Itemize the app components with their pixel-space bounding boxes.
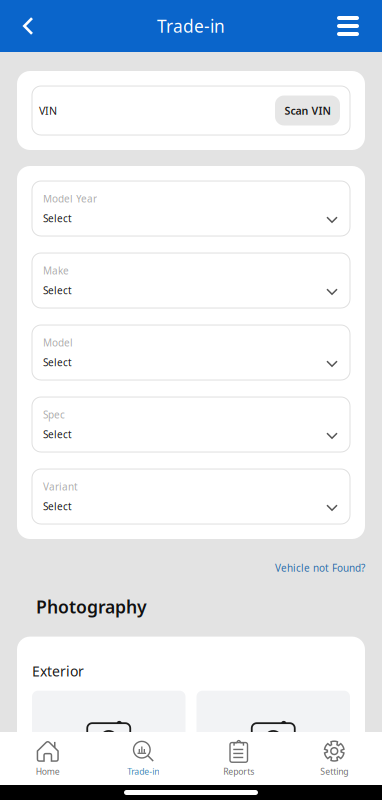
staticText: Select (43, 283, 72, 297)
button[interactable]: Scan VIN (275, 95, 340, 125)
staticText: Select (43, 355, 72, 369)
button[interactable]: Trade-in (95, 732, 191, 785)
button[interactable]: Reports (191, 732, 286, 785)
button[interactable]: Spec (32, 397, 350, 452)
button[interactable]: Add exterior photo (32, 691, 185, 795)
staticText: Vehicle not Found? (275, 561, 365, 575)
staticText: Trade-in (157, 14, 225, 38)
button[interactable]: Make (32, 253, 350, 308)
staticText: Model (43, 336, 73, 349)
staticText: Trade-in (127, 766, 159, 777)
button[interactable]: Setting (286, 732, 382, 785)
button[interactable]: Add exterior photo (196, 691, 350, 795)
staticText: Reports (223, 766, 254, 777)
staticText: Select (43, 211, 72, 225)
staticText: Make (43, 264, 69, 277)
staticText: Setting (320, 766, 348, 777)
button[interactable]: Menu (326, 6, 370, 46)
staticText: Select (43, 499, 72, 513)
button[interactable]: Back (8, 6, 48, 46)
staticText: Spec (43, 408, 65, 421)
staticText: Exterior (32, 662, 84, 681)
button[interactable]: Variant (32, 469, 350, 524)
staticText: Select (43, 427, 72, 441)
button[interactable]: Model Year (32, 181, 350, 236)
staticText: Photography (36, 595, 147, 619)
button[interactable]: Home (0, 732, 95, 785)
button[interactable]: Model (32, 325, 350, 380)
staticText: Scan VIN (284, 103, 330, 118)
staticText: Home (36, 766, 60, 777)
staticText: VIN (39, 103, 57, 118)
button[interactable]: Vehicle not Found? (275, 557, 365, 579)
staticText: Model Year (43, 192, 97, 205)
staticText: Variant (43, 480, 78, 493)
